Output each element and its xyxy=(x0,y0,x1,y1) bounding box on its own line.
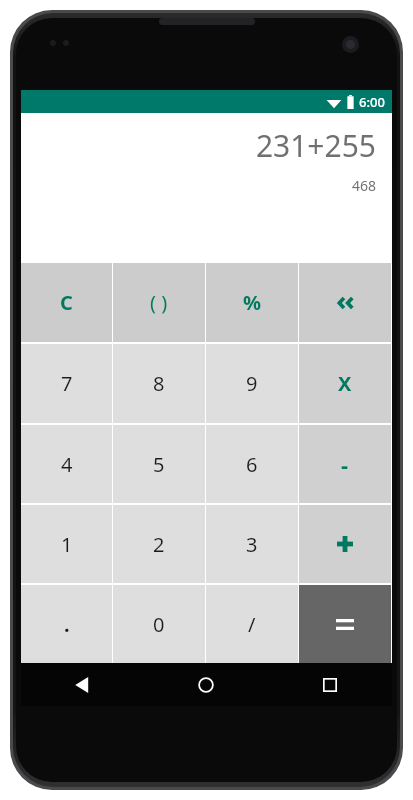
button[interactable]: 5 xyxy=(113,425,205,503)
button[interactable]: C xyxy=(21,263,112,342)
button[interactable]: % xyxy=(206,263,298,342)
staticText: - xyxy=(341,449,349,479)
button[interactable]: / xyxy=(206,585,298,663)
staticText: / xyxy=(248,611,256,638)
button[interactable]: Back xyxy=(21,663,144,706)
button[interactable]: 8 xyxy=(113,344,205,423)
staticText: 6 xyxy=(246,451,258,478)
staticText: 6:00 xyxy=(359,93,385,111)
staticText: 1 xyxy=(61,531,73,558)
staticText: 231+255 xyxy=(255,125,376,166)
button[interactable]: 4 xyxy=(21,425,112,503)
button[interactable]: - xyxy=(299,425,391,503)
staticText: C xyxy=(60,289,73,316)
button[interactable]: Plus xyxy=(299,505,391,583)
staticText: 4 xyxy=(61,451,73,478)
button[interactable]: Recents xyxy=(268,663,392,706)
button[interactable]: 0 xyxy=(113,585,205,663)
staticText: 7 xyxy=(61,370,73,397)
button[interactable]: ( ) xyxy=(113,263,205,342)
staticText: 2 xyxy=(153,531,165,558)
button[interactable]: 6 xyxy=(206,425,298,503)
button[interactable]: Backspace xyxy=(299,263,391,342)
button[interactable]: 2 xyxy=(113,505,205,583)
staticText: 9 xyxy=(246,370,258,397)
staticText: X xyxy=(338,370,352,397)
button[interactable]: 1 xyxy=(21,505,112,583)
button[interactable]: X xyxy=(299,344,391,423)
staticText: 3 xyxy=(246,531,258,558)
staticText: 8 xyxy=(153,370,165,397)
button[interactable]: 3 xyxy=(206,505,298,583)
button[interactable]: Equals xyxy=(299,585,391,663)
staticText: 0 xyxy=(153,611,165,638)
button[interactable]: Home xyxy=(144,663,268,706)
button[interactable]: 9 xyxy=(206,344,298,423)
staticText: 468 xyxy=(351,176,376,195)
staticText: 5 xyxy=(153,451,165,478)
staticText: % xyxy=(243,289,262,316)
staticText: . xyxy=(64,611,70,638)
button[interactable]: . xyxy=(21,585,112,663)
staticText: ( ) xyxy=(150,289,168,316)
button[interactable]: 7 xyxy=(21,344,112,423)
